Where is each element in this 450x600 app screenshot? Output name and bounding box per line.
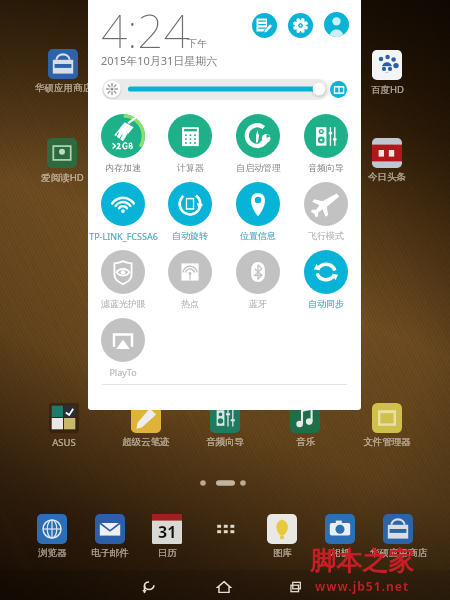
staticText: 日历 [158, 547, 177, 559]
button[interactable]: TP-LINK_FCSSA6 [88, 182, 158, 242]
button[interactable]: User profile [324, 12, 349, 37]
button[interactable]: 相机 [309, 514, 371, 560]
button[interactable]: 音乐 [274, 403, 336, 449]
staticText: 浏览器 [38, 547, 67, 559]
button[interactable]: 文件管理器 [356, 403, 418, 449]
button[interactable]: 飞行模式 [291, 182, 361, 242]
button[interactable]: 华硕应用商店 [32, 49, 94, 95]
staticText: ASUS [52, 436, 76, 449]
button[interactable]: 自启动管理 [223, 114, 293, 174]
staticText: 华硕应用商店 [370, 547, 427, 559]
staticText: 飞行模式 [308, 230, 344, 241]
staticText: 热点 [181, 298, 199, 309]
button[interactable]: 浏览器 [21, 514, 83, 560]
staticText: PlayTo [109, 366, 137, 378]
button[interactable]: 爱阅读HD [31, 138, 93, 184]
button[interactable]: 超级云笔迹 [115, 403, 177, 449]
staticText: www.jb51.net [315, 578, 410, 594]
staticText: 位置信息 [240, 230, 276, 241]
button[interactable]: 华硕应用商店 [367, 514, 429, 560]
button[interactable]: 音频向导 [291, 114, 361, 174]
staticText: 相机 [331, 547, 350, 559]
staticText: 爱阅读HD [41, 171, 84, 184]
button[interactable]: Home [204, 574, 244, 600]
staticText: 图库 [273, 547, 292, 559]
button[interactable]: All apps [210, 514, 240, 544]
button[interactable]: 自动旋转 [155, 182, 225, 242]
button[interactable]: 31 [136, 514, 198, 560]
staticText: 2015年10月31日星期六 [101, 53, 218, 68]
staticText: 百度HD [371, 83, 404, 96]
staticText: 脚本之家 [310, 545, 414, 578]
staticText: 音频向导 [308, 162, 344, 173]
staticText: 自动同步 [308, 298, 344, 309]
button[interactable]: 蓝牙 [223, 250, 293, 310]
staticText: 文件管理器 [363, 436, 411, 448]
button[interactable]: 今日头条 [356, 138, 418, 184]
button[interactable]: Recent apps [276, 574, 316, 600]
staticText: 滤蓝光护眼 [101, 298, 146, 309]
staticText: 31 [158, 521, 177, 543]
staticText: 自动旋转 [172, 230, 208, 241]
button[interactable]: 内存加速 [88, 114, 158, 174]
button[interactable]: PlayTo [88, 318, 158, 378]
staticText: 华硕应用商店 [35, 82, 92, 94]
button[interactable]: Auto brightness [330, 81, 347, 98]
button[interactable]: ASUS [33, 403, 95, 449]
staticText: 内存加速 [105, 162, 141, 173]
button[interactable]: Settings [288, 13, 313, 38]
button[interactable]: Brightness [102, 79, 329, 100]
button[interactable]: 电子邮件 [79, 514, 141, 560]
button[interactable]: 音频向导 [194, 403, 256, 449]
staticText: 计算器 [177, 162, 204, 173]
staticText: 音频向导 [206, 436, 244, 448]
button[interactable]: Back [129, 574, 169, 600]
button[interactable]: 计算器 [155, 114, 225, 174]
button[interactable]: 图库 [251, 514, 313, 560]
button[interactable]: 位置信息 [223, 182, 293, 242]
button[interactable]: Notes [252, 13, 277, 38]
button[interactable]: 自动同步 [291, 250, 361, 310]
staticText: TP-LINK_FCSSA6 [89, 230, 158, 242]
staticText: 蓝牙 [249, 298, 267, 309]
button[interactable]: 热点 [155, 250, 225, 310]
staticText: 音乐 [296, 436, 315, 448]
button[interactable]: 百度HD [356, 50, 418, 96]
staticText: 今日头条 [368, 171, 406, 183]
button[interactable]: 滤蓝光护眼 [88, 250, 158, 310]
staticText: 自启动管理 [236, 162, 281, 173]
staticText: 4:24 [101, 0, 190, 62]
staticText: 电子邮件 [91, 547, 129, 559]
staticText: 下午 [187, 37, 207, 50]
staticText: 超级云笔迹 [122, 436, 170, 448]
